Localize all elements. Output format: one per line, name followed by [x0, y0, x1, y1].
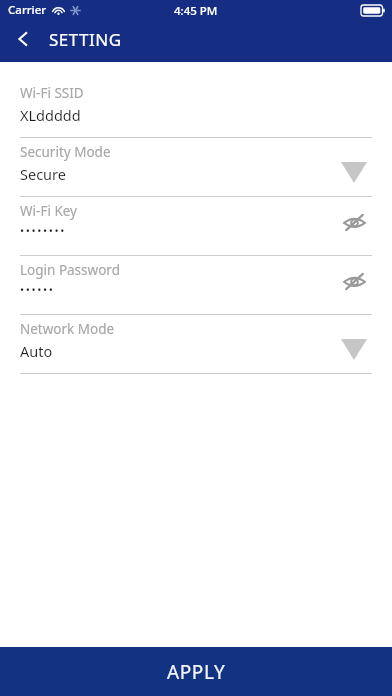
staticText: •••••• — [20, 282, 55, 297]
button[interactable]: Wi-Fi Key — [0, 197, 392, 256]
button[interactable]: Network Mode — [0, 315, 392, 374]
button[interactable]: Show Wi-Fi Key — [334, 205, 374, 239]
button[interactable]: Open Security Mode options — [336, 159, 372, 185]
staticText: SETTING — [49, 28, 122, 51]
staticText: Wi-Fi Key — [20, 202, 77, 220]
staticText: Auto — [20, 341, 53, 361]
button[interactable]: Login Password — [0, 256, 392, 315]
staticText: APPLY — [167, 659, 226, 685]
button[interactable]: Open Network Mode options — [336, 336, 372, 362]
staticText: •••••••• — [20, 223, 66, 238]
staticText: Network Mode — [20, 320, 115, 338]
staticText: Secure — [20, 164, 66, 184]
staticText: Security Mode — [20, 143, 111, 161]
staticText: Wi-Fi SSID — [20, 84, 84, 102]
button[interactable]: Security Mode — [0, 138, 392, 197]
button[interactable]: Wi-Fi SSID — [0, 79, 392, 138]
button[interactable]: APPLY — [0, 647, 392, 696]
button[interactable]: Back — [4, 22, 42, 56]
button[interactable]: Show Login Password — [334, 264, 374, 298]
staticText: Login Password — [20, 261, 120, 279]
staticText: 4:45 PM — [174, 3, 218, 19]
staticText: XLddddd — [20, 105, 81, 125]
staticText: Carrier — [8, 2, 47, 18]
